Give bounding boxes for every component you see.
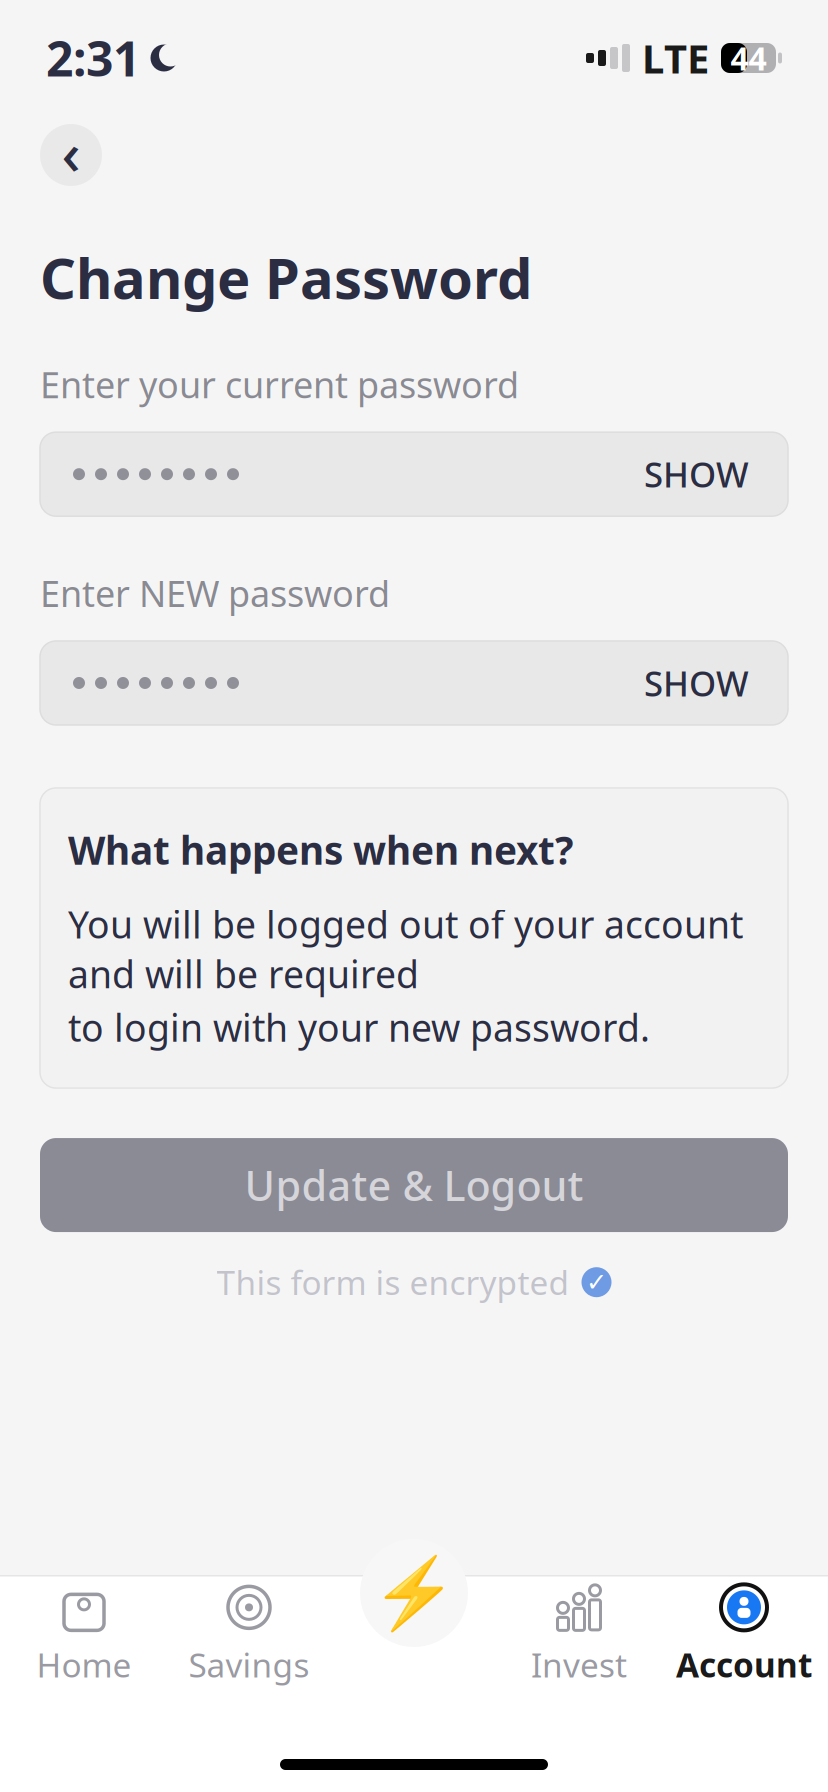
button[interactable]: Back <box>40 124 102 186</box>
staticText: ✓ <box>586 1268 607 1297</box>
staticText: This form is encrypted <box>216 1260 569 1304</box>
staticText: Savings <box>188 1642 309 1687</box>
staticText: to login with your new password. <box>68 1002 650 1052</box>
button[interactable]: Quick actions <box>360 1539 468 1647</box>
staticText: LTE <box>642 31 709 84</box>
staticText: Invest <box>531 1642 627 1687</box>
staticText: You will be logged out of your account a… <box>68 899 743 998</box>
staticText: Account <box>676 1642 812 1687</box>
button[interactable]: Account <box>661 1576 826 1694</box>
staticText: Home <box>36 1642 131 1687</box>
staticText: SHOW <box>644 451 749 497</box>
button[interactable]: SHOW <box>638 652 755 714</box>
staticText: 44 <box>730 37 766 79</box>
staticText: ‹ <box>61 113 80 191</box>
staticText: 2:31 <box>46 26 140 90</box>
staticText: Change Password <box>40 240 532 314</box>
button[interactable]: SHOW <box>638 443 755 505</box>
staticText: What happens when next? <box>68 824 573 875</box>
staticText: ⚡ <box>371 1553 457 1633</box>
staticText: SHOW <box>644 660 749 706</box>
button[interactable]: Invest <box>496 1576 661 1694</box>
staticText: Enter your current password <box>40 360 519 408</box>
button[interactable]: Update & Logout <box>40 1138 788 1232</box>
button[interactable]: Savings <box>166 1576 331 1694</box>
staticText: Update & Logout <box>244 1158 583 1212</box>
staticText: Enter NEW password <box>40 569 390 617</box>
button[interactable]: ⌂ <box>1 1576 166 1694</box>
